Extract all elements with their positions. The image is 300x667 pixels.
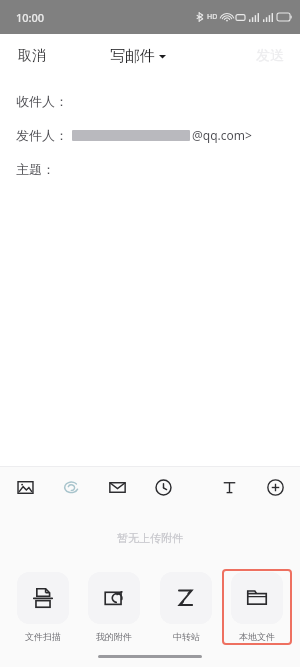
button[interactable]: 文件扫描 (8, 569, 78, 645)
button[interactable]: Schedule send (148, 472, 178, 502)
button[interactable]: 发件人： (0, 118, 300, 152)
staticText: 发件人： (16, 127, 68, 143)
staticText: 暂无上传附件 (117, 531, 183, 545)
staticText: @qq.com> (192, 127, 252, 143)
button[interactable]: 本地文件 (222, 569, 292, 645)
button[interactable]: Cloud attachment (56, 472, 86, 502)
staticText: 我的附件 (96, 631, 132, 642)
button[interactable]: More (260, 472, 290, 502)
button[interactable]: 主题： (0, 152, 300, 186)
staticText: 写邮件 (110, 47, 155, 66)
staticText: 10:00 (16, 10, 45, 25)
staticText: 中转站 (173, 631, 200, 642)
button[interactable]: Insert image (10, 472, 40, 502)
button[interactable]: 我的附件 (79, 569, 149, 645)
staticText: 文件扫描 (25, 631, 61, 642)
button[interactable]: 发送 (240, 39, 300, 73)
button[interactable]: 收件人： (0, 84, 300, 118)
button[interactable]: Mail (102, 472, 132, 502)
staticText: 主题： (16, 161, 55, 177)
staticText: 发送 (256, 47, 284, 65)
button[interactable]: 中转站 (151, 569, 221, 645)
staticText: HD (207, 12, 218, 22)
button[interactable]: Text format (214, 472, 244, 502)
staticText: 本地文件 (239, 631, 275, 642)
staticText: 收件人： (16, 93, 68, 109)
staticText: 取消 (18, 47, 46, 65)
button[interactable]: 写邮件 (104, 41, 172, 72)
button[interactable]: 取消 (0, 39, 64, 73)
